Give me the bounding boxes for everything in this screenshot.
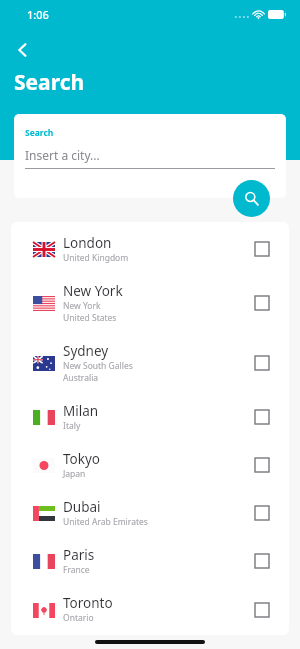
staticText: Insert a city... bbox=[25, 147, 100, 163]
staticText: New South Galles bbox=[63, 360, 133, 372]
staticText: Sydney bbox=[63, 342, 109, 360]
staticText: New York bbox=[63, 282, 123, 300]
staticText: Australia bbox=[63, 372, 99, 384]
staticText: France bbox=[63, 564, 90, 576]
staticText: Milan bbox=[63, 402, 99, 420]
staticText: Search bbox=[14, 68, 85, 97]
staticText: Dubai bbox=[63, 498, 101, 516]
button[interactable]: Select Paris bbox=[249, 548, 275, 574]
button[interactable]: Dubai bbox=[11, 489, 289, 537]
button[interactable]: London bbox=[11, 225, 289, 273]
button[interactable]: Select Dubai bbox=[249, 500, 275, 526]
button[interactable]: Select Tokyo bbox=[249, 452, 275, 478]
button[interactable]: Select Sydney bbox=[249, 350, 275, 376]
staticText: Ontario bbox=[63, 612, 94, 624]
staticText: Search bbox=[25, 127, 54, 139]
staticText: Tokyo bbox=[63, 450, 100, 468]
button[interactable]: Tokyo bbox=[11, 441, 289, 489]
button[interactable]: Milan bbox=[11, 393, 289, 441]
staticText: Japan bbox=[63, 468, 86, 480]
button[interactable]: Back bbox=[7, 34, 39, 66]
button[interactable]: Select London bbox=[249, 236, 275, 262]
staticText: Italy bbox=[63, 420, 81, 432]
button[interactable]: Sydney bbox=[11, 333, 289, 393]
button[interactable]: Search bbox=[233, 180, 270, 217]
staticText: United Kingdom bbox=[63, 252, 129, 264]
staticText: New York bbox=[63, 300, 101, 312]
staticText: United Arab Emirates bbox=[63, 516, 148, 528]
staticText: 1:06 bbox=[27, 7, 49, 22]
staticText: United States bbox=[63, 312, 117, 324]
button[interactable]: Toronto bbox=[11, 585, 289, 635]
button[interactable]: Select New York bbox=[249, 290, 275, 316]
button[interactable]: Select Milan bbox=[249, 404, 275, 430]
button[interactable]: Select Toronto bbox=[249, 597, 275, 623]
staticText: Toronto bbox=[63, 594, 113, 612]
staticText: London bbox=[63, 234, 112, 252]
staticText: Paris bbox=[63, 546, 95, 564]
button[interactable]: Paris bbox=[11, 537, 289, 585]
button[interactable]: New York bbox=[11, 273, 289, 333]
button[interactable]: Insert a city... bbox=[25, 147, 275, 163]
